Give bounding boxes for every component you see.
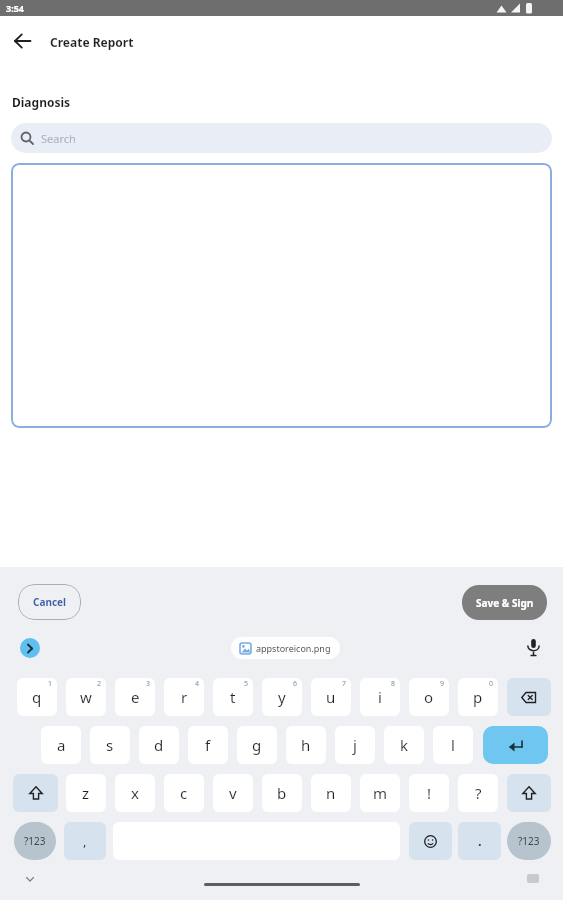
button[interactable]: y	[262, 678, 302, 716]
button[interactable]: t	[213, 678, 253, 716]
staticText: p	[473, 687, 483, 707]
staticText: Diagnosis	[12, 94, 71, 110]
button[interactable]: l	[433, 726, 473, 764]
staticText: i	[378, 687, 382, 707]
staticText: v	[229, 783, 237, 803]
button[interactable]: i	[360, 678, 400, 716]
staticText: 3:54	[6, 2, 24, 14]
staticText: ?	[475, 783, 482, 803]
staticText: l	[451, 735, 455, 755]
staticText: Cancel	[33, 595, 67, 609]
staticText: x	[131, 783, 139, 803]
button[interactable]: o	[409, 678, 449, 716]
button[interactable]: ?123	[14, 822, 56, 860]
button[interactable]: Save & Sign	[462, 585, 547, 620]
button[interactable]: g	[237, 726, 277, 764]
button[interactable]: ?	[458, 774, 498, 812]
button[interactable]: d	[139, 726, 179, 764]
button[interactable]	[11, 163, 552, 428]
staticText: 5	[244, 679, 249, 689]
staticText: h	[301, 735, 311, 755]
button[interactable]: p	[458, 678, 498, 716]
staticText: 7	[342, 679, 347, 689]
staticText: a	[57, 735, 66, 755]
button[interactable]: k	[384, 726, 424, 764]
staticText: b	[277, 783, 287, 803]
button[interactable]	[507, 774, 551, 812]
button[interactable]: e	[115, 678, 155, 716]
button[interactable]	[6, 30, 40, 52]
staticText: 9	[440, 679, 445, 689]
staticText: .	[478, 832, 482, 850]
staticText: c	[180, 783, 188, 803]
staticText: 4	[195, 679, 200, 689]
staticText: 6	[293, 679, 298, 689]
button[interactable]: ,	[64, 822, 106, 860]
staticText: j	[353, 735, 357, 755]
staticText: o	[424, 687, 434, 707]
button[interactable]: x	[115, 774, 155, 812]
button[interactable]: q	[17, 678, 57, 716]
staticText: q	[32, 687, 42, 707]
staticText: 0	[489, 679, 494, 689]
staticText: y	[278, 687, 286, 707]
staticText: Search	[41, 131, 76, 146]
staticText: r	[181, 687, 188, 707]
staticText: appstoreicon.png	[256, 642, 331, 654]
staticText: n	[326, 783, 336, 803]
button[interactable]: c	[164, 774, 204, 812]
staticText: ?123	[518, 834, 540, 848]
button[interactable]: Cancel	[18, 584, 81, 620]
staticText: e	[131, 687, 140, 707]
button[interactable]	[527, 639, 540, 658]
staticText: d	[154, 735, 164, 755]
staticText: ?123	[24, 834, 46, 848]
button[interactable]: b	[262, 774, 302, 812]
button[interactable]: appstoreicon.png	[231, 637, 340, 659]
button[interactable]: !	[409, 774, 449, 812]
button[interactable]: z	[66, 774, 106, 812]
button[interactable]: h	[286, 726, 326, 764]
staticText: 1	[48, 679, 53, 689]
staticText: Create Report	[50, 34, 134, 50]
staticText: z	[82, 783, 90, 803]
staticText: m	[373, 783, 388, 803]
staticText: Save & Sign	[476, 596, 534, 610]
staticText: f	[205, 735, 211, 755]
staticText: s	[106, 735, 114, 755]
staticText: w	[80, 687, 92, 707]
button[interactable]: w	[66, 678, 106, 716]
button[interactable]	[483, 726, 548, 764]
staticText: 3	[146, 679, 151, 689]
button[interactable]: u	[311, 678, 351, 716]
staticText: 8	[391, 679, 396, 689]
button[interactable]	[20, 638, 40, 658]
button[interactable]	[507, 678, 551, 716]
button[interactable]: .	[458, 822, 501, 860]
button[interactable]	[26, 877, 34, 882]
staticText: k	[400, 735, 409, 755]
button[interactable]: Search	[11, 123, 552, 153]
button[interactable]	[409, 822, 452, 860]
staticText: g	[252, 735, 262, 755]
staticText: t	[230, 687, 236, 707]
button[interactable]	[13, 774, 58, 812]
button[interactable]: m	[360, 774, 400, 812]
button[interactable]: ?123	[507, 822, 551, 860]
staticText: 2	[97, 679, 102, 689]
button[interactable]: v	[213, 774, 253, 812]
button[interactable]: r	[164, 678, 204, 716]
staticText: u	[326, 687, 336, 707]
button[interactable]: j	[335, 726, 375, 764]
button[interactable]: n	[311, 774, 351, 812]
staticText: ,	[83, 832, 87, 850]
button[interactable]: s	[90, 726, 130, 764]
button[interactable]: f	[188, 726, 228, 764]
staticText: !	[427, 783, 432, 803]
button[interactable]: a	[41, 726, 81, 764]
